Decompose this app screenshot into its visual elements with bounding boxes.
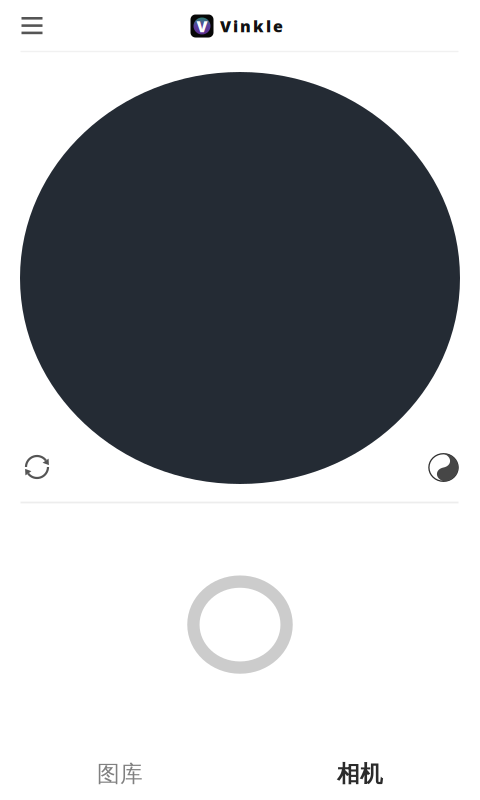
staticText: V i n k l e (220, 15, 283, 37)
button[interactable]: Menu (10, 3, 54, 47)
staticText: 相机 (337, 760, 383, 788)
button[interactable]: Shutter (187, 575, 293, 675)
staticText: 图库 (97, 760, 143, 788)
staticText: V (196, 15, 207, 37)
button[interactable]: Switch camera (23, 454, 50, 480)
button[interactable]: 相机 (240, 746, 480, 800)
button[interactable]: Toggle filter (428, 453, 459, 482)
button[interactable]: 图库 (0, 746, 240, 800)
